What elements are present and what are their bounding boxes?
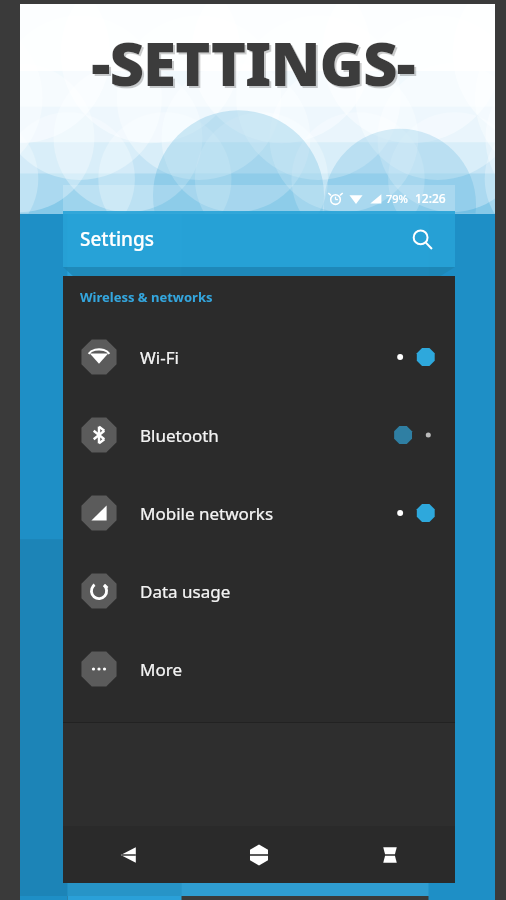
staticText: Data usage <box>140 580 231 603</box>
button[interactable]: Home <box>193 826 324 883</box>
staticText: More <box>140 658 182 681</box>
button[interactable]: Recents <box>324 826 455 883</box>
button[interactable]: Data usage <box>63 552 455 630</box>
staticText: -SETTINGS- <box>93 24 417 106</box>
staticText: Wireless & networks <box>80 288 213 306</box>
button[interactable]: Mobile networks toggle <box>393 502 435 524</box>
staticText: Settings <box>80 226 154 252</box>
button[interactable]: Bluetooth <box>63 396 455 474</box>
staticText: 79% <box>386 191 408 206</box>
button[interactable]: Wi-Fi toggle <box>393 346 435 368</box>
staticText: Mobile networks <box>140 502 274 525</box>
button[interactable]: Search <box>405 222 439 256</box>
button[interactable]: Wi-Fi <box>63 318 455 396</box>
button[interactable]: Bluetooth toggle <box>393 424 435 446</box>
staticText: Wi-Fi <box>140 346 179 369</box>
button[interactable]: More <box>63 630 455 708</box>
staticText: 12:26 <box>415 190 446 206</box>
staticText: Bluetooth <box>140 424 219 447</box>
staticText: -SETTINGS- <box>91 22 415 104</box>
button[interactable]: Back <box>63 826 193 883</box>
button[interactable]: Mobile networks <box>63 474 455 552</box>
